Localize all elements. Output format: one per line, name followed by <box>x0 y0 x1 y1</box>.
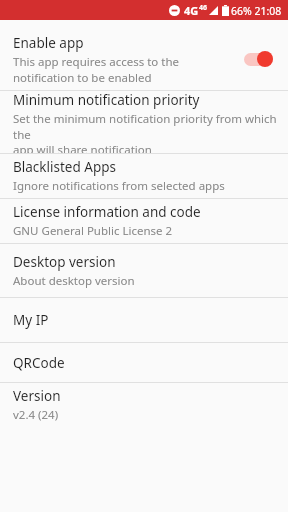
staticText: 4G <box>184 3 199 18</box>
button[interactable]: Enable app <box>0 28 288 90</box>
staticText: 66% 21:08 <box>231 4 282 18</box>
staticText: Desktop version <box>13 253 116 271</box>
button[interactable]: Minimum notification priority <box>0 91 288 153</box>
staticText: Version <box>13 387 61 405</box>
button[interactable]: Blacklisted Apps <box>0 154 288 198</box>
staticText: v2.4 (24) <box>13 407 59 423</box>
staticText: Blacklisted Apps <box>13 158 116 176</box>
staticText: Minimum notification priority <box>13 91 200 109</box>
staticText: Set the minimum notification priority fr… <box>13 111 278 153</box>
staticText: 46 <box>199 3 208 13</box>
staticText: Enable app <box>13 34 84 52</box>
staticText: GNU General Public License 2 <box>13 223 173 239</box>
button[interactable]: Desktop version <box>0 244 288 297</box>
staticText: Ignore notifications from selected apps <box>13 178 225 194</box>
button[interactable]: QRCode <box>0 343 288 382</box>
staticText: My IP <box>13 311 49 329</box>
button[interactable]: License information and code <box>0 199 288 243</box>
button[interactable]: Enable app toggle <box>238 47 278 71</box>
staticText: About desktop version <box>13 273 135 289</box>
staticText: QRCode <box>13 354 65 372</box>
staticText: License information and code <box>13 203 201 221</box>
button[interactable]: My IP <box>0 298 288 342</box>
button[interactable]: Version <box>0 383 288 427</box>
staticText: This app requires access to the notifica… <box>13 54 180 85</box>
